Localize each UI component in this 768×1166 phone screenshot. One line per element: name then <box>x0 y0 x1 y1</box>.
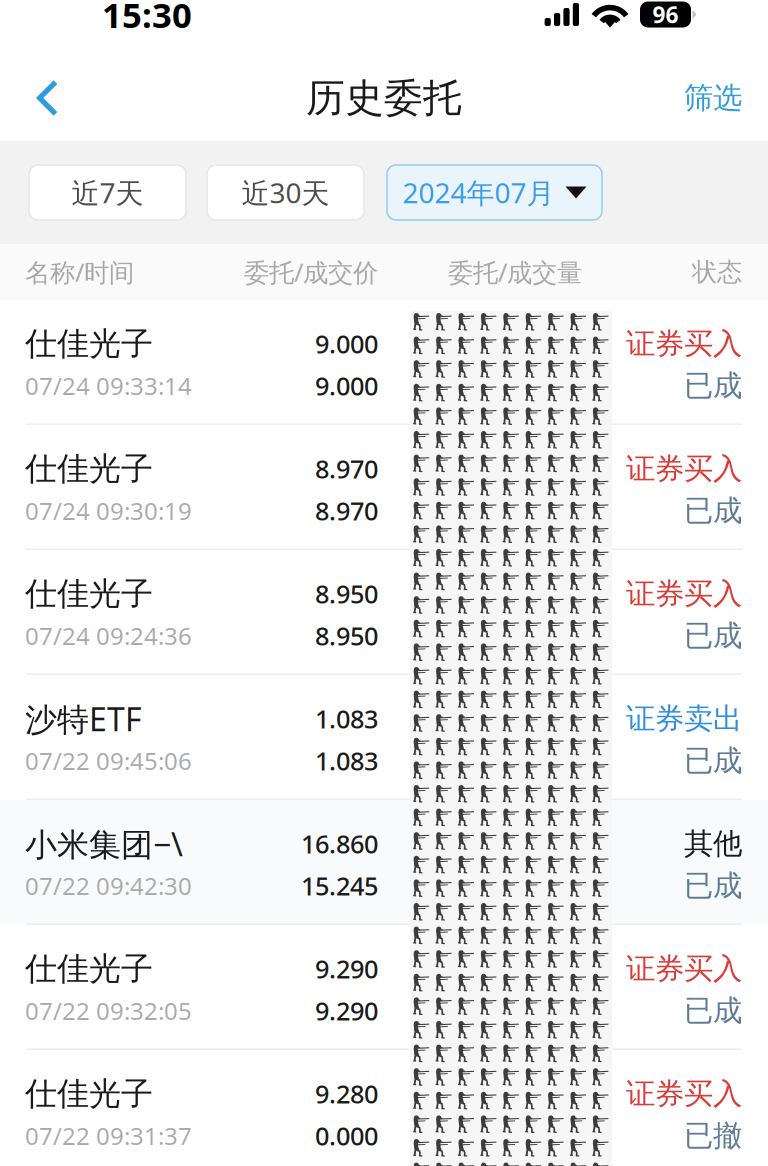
staticText: 名称/时间 <box>25 255 134 289</box>
staticText: 07/22 09:45:06 <box>25 745 192 777</box>
staticText: 仕佳光子 <box>25 324 153 364</box>
button[interactable]: 仕佳光子 <box>0 925 768 1048</box>
staticText: 近30天 <box>241 173 329 211</box>
staticText: 9.280 <box>315 1077 378 1110</box>
staticText: 筛选 <box>684 79 742 116</box>
staticText: 其他 <box>684 825 742 862</box>
staticText: 07/22 09:32:05 <box>25 995 192 1027</box>
staticText: 已成 <box>684 617 742 654</box>
staticText: 仕佳光子 <box>25 574 153 614</box>
staticText: 已成 <box>684 992 742 1029</box>
staticText: 证券卖出 <box>626 700 742 737</box>
staticText: 07/24 09:30:19 <box>25 495 192 527</box>
staticText: 证券买入 <box>626 325 742 362</box>
staticText: 9.000 <box>315 369 378 402</box>
staticText: 状态 <box>692 256 742 288</box>
staticText: 1.083 <box>315 702 378 735</box>
staticText: 8.950 <box>315 577 378 610</box>
staticText: 证券买入 <box>626 450 742 487</box>
staticText: 9.000 <box>315 327 378 360</box>
staticText: 小米集团−\ <box>25 822 183 866</box>
staticText: 历史委托 <box>306 74 462 122</box>
staticText: 07/24 09:33:14 <box>25 370 192 402</box>
button[interactable]: 近7天 <box>29 165 186 220</box>
staticText: 9.290 <box>315 952 378 985</box>
staticText: 07/22 09:42:30 <box>25 870 192 902</box>
staticText: 8.970 <box>315 452 378 485</box>
button[interactable]: 沙特ETF <box>0 675 768 798</box>
staticText: 已成 <box>684 492 742 529</box>
staticText: 仕佳光子 <box>25 1074 153 1114</box>
staticText: 07/22 09:31:37 <box>25 1120 192 1152</box>
staticText: 委托/成交价 <box>244 255 378 289</box>
staticText: 16.860 <box>301 827 378 860</box>
button[interactable]: 返回 <box>0 55 96 141</box>
button[interactable]: 2024年07月 <box>387 165 602 220</box>
staticText: 仕佳光子 <box>25 949 153 989</box>
staticText: 证券买入 <box>626 950 742 987</box>
button[interactable]: 筛选 <box>642 55 768 141</box>
staticText: 8.970 <box>315 494 378 527</box>
staticText: 96 <box>652 0 678 29</box>
staticText: 证券买入 <box>626 575 742 612</box>
staticText: 1.083 <box>315 744 378 777</box>
button[interactable]: 仕佳光子 <box>0 300 768 423</box>
staticText: 已成 <box>684 742 742 779</box>
staticText: 已成 <box>684 867 742 904</box>
button[interactable]: 仕佳光子 <box>0 550 768 673</box>
staticText: 已撤 <box>684 1117 742 1154</box>
staticText: 15:30 <box>102 0 192 37</box>
staticText: 沙特ETF <box>25 697 142 741</box>
staticText: 2024年07月 <box>402 173 554 211</box>
staticText: 15.245 <box>301 869 378 902</box>
staticText: 0.000 <box>315 1119 378 1152</box>
staticText: 委托/成交量 <box>448 255 582 289</box>
button[interactable]: 小米集团−\ <box>0 800 768 923</box>
button[interactable]: 仕佳光子 <box>0 425 768 548</box>
button[interactable]: 仕佳光子 <box>0 1050 768 1166</box>
button[interactable]: 近30天 <box>207 165 364 220</box>
staticText: 近7天 <box>71 173 143 211</box>
staticText: 证券买入 <box>626 1075 742 1112</box>
staticText: 已成 <box>684 367 742 404</box>
staticText: 07/24 09:24:36 <box>25 620 192 652</box>
staticText: 9.290 <box>315 994 378 1027</box>
staticText: 8.950 <box>315 619 378 652</box>
staticText: 仕佳光子 <box>25 449 153 489</box>
